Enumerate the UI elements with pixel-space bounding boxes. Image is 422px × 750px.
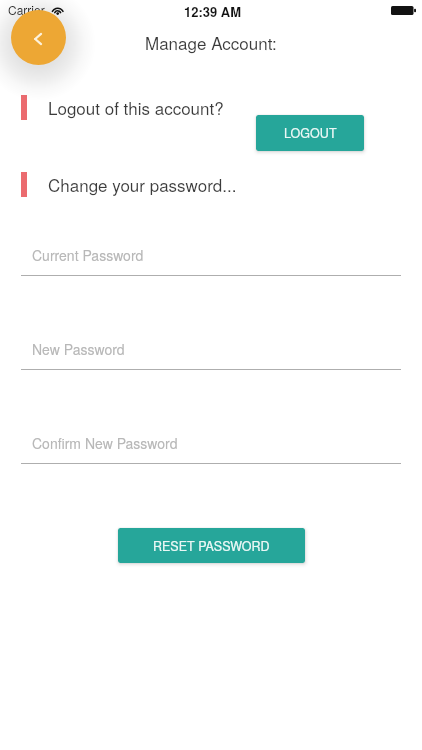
staticText: LOGOUT xyxy=(284,124,337,142)
staticText: Logout of this account? xyxy=(48,95,224,119)
button[interactable]: Confirm New Password xyxy=(21,425,401,464)
button[interactable]: Current Password xyxy=(21,237,401,276)
staticText: Manage Account: xyxy=(145,30,277,54)
button[interactable]: Back xyxy=(11,10,66,65)
staticText: RESET PASSWORD xyxy=(153,537,270,555)
staticText: Change your password... xyxy=(48,172,237,196)
button[interactable]: New Password xyxy=(21,331,401,370)
staticText: Confirm New Password xyxy=(32,433,178,453)
button[interactable]: RESET PASSWORD xyxy=(118,528,305,563)
button[interactable]: LOGOUT xyxy=(256,115,364,151)
staticText: New Password xyxy=(32,339,125,359)
staticText: Current Password xyxy=(32,245,144,265)
staticText: 12:39 AM xyxy=(184,2,242,21)
staticText: Carrier xyxy=(8,1,45,18)
